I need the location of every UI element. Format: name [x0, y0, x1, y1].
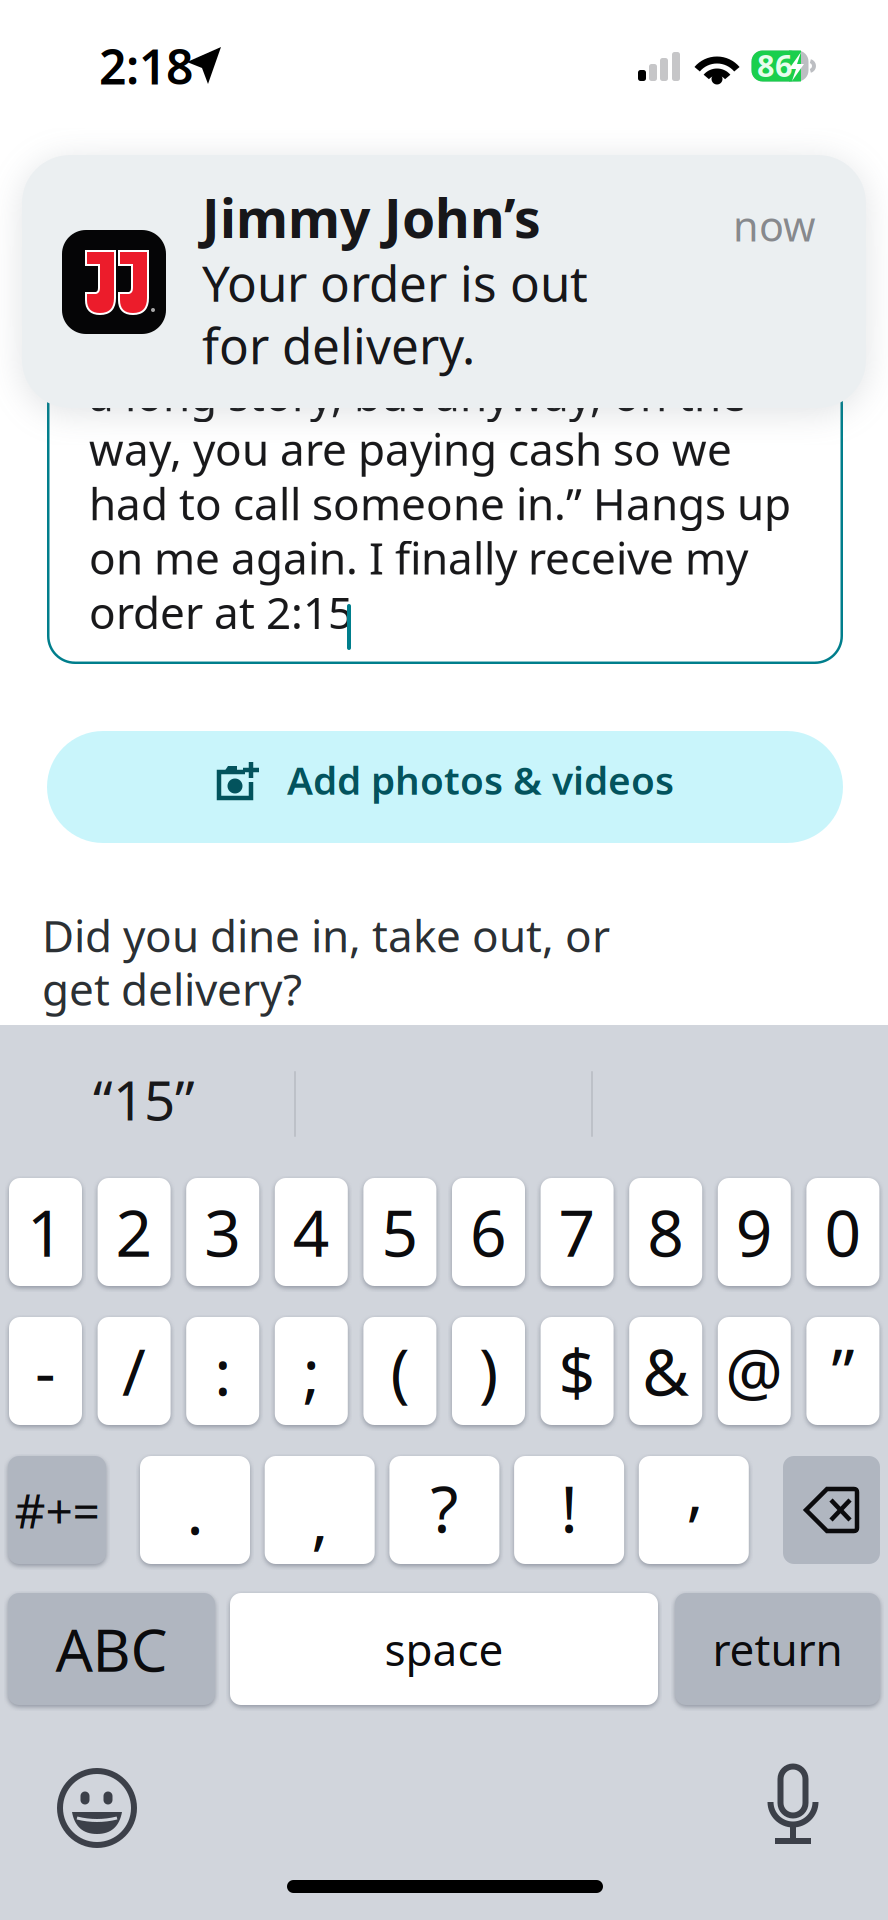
staticText: ;	[303, 1328, 320, 1413]
button[interactable]: Delete	[783, 1456, 880, 1564]
button[interactable]: return	[675, 1593, 880, 1705]
button[interactable]: ;	[275, 1317, 348, 1425]
staticText: :	[214, 1328, 231, 1413]
staticText: had to call someone in.” Hangs up	[89, 474, 791, 532]
staticText: Did you dine in, take out, or	[42, 906, 610, 964]
staticText: Your order is out	[202, 250, 588, 315]
staticText: 2	[116, 1189, 153, 1274]
button[interactable]: 3	[186, 1178, 259, 1286]
staticText: a long story, but anyway, on the	[89, 365, 746, 423]
button[interactable]: 4	[275, 1178, 348, 1286]
button[interactable]: ”	[806, 1317, 879, 1425]
staticText: 86	[757, 45, 793, 85]
staticText: 9	[736, 1189, 773, 1274]
staticText: on me again. I finally receive my	[89, 528, 748, 587]
button[interactable]: Emoji keyboard	[59, 1770, 135, 1846]
button[interactable]: @	[718, 1317, 791, 1425]
staticText: space	[384, 1620, 503, 1678]
button[interactable]: !	[514, 1456, 624, 1564]
button[interactable]: ABC	[8, 1593, 215, 1705]
button[interactable]: Add photos & videos	[47, 731, 843, 843]
staticText: order at 2:15	[89, 583, 353, 641]
staticText: return	[712, 1620, 842, 1678]
staticText: 3	[204, 1189, 241, 1274]
button[interactable]: #+=	[8, 1456, 106, 1564]
staticText: &	[642, 1328, 689, 1413]
button[interactable]: 5	[363, 1178, 436, 1286]
button[interactable]: space	[230, 1593, 658, 1705]
staticText: (	[390, 1328, 409, 1413]
staticText: ,	[311, 1476, 328, 1561]
staticText: ABC	[55, 1610, 167, 1688]
button[interactable]: :	[186, 1317, 259, 1425]
staticText: ”	[831, 1328, 854, 1413]
staticText: @	[725, 1328, 783, 1413]
button[interactable]: Dictate	[765, 1766, 821, 1846]
staticText: ?	[430, 1465, 458, 1550]
staticText: Add photos & videos	[287, 754, 674, 805]
button[interactable]: .	[140, 1456, 250, 1564]
staticText: ’	[688, 1485, 699, 1570]
button[interactable]: -	[9, 1317, 82, 1425]
button[interactable]: /	[98, 1317, 171, 1425]
staticText: 4	[293, 1189, 330, 1274]
staticText: $	[559, 1328, 596, 1413]
staticText: now	[733, 198, 815, 253]
staticText: #+=	[14, 1478, 99, 1542]
staticText: get delivery?	[42, 959, 302, 1018]
button[interactable]: )	[452, 1317, 525, 1425]
button[interactable]: 1	[9, 1178, 82, 1286]
button[interactable]: 8	[629, 1178, 702, 1286]
button[interactable]: 7	[541, 1178, 614, 1286]
button[interactable]: 9	[718, 1178, 791, 1286]
staticText: -	[35, 1328, 56, 1413]
staticText: 8	[647, 1189, 684, 1274]
staticText: !	[561, 1465, 578, 1550]
button[interactable]: Jimmy John’s	[22, 155, 866, 408]
button[interactable]: ?	[389, 1456, 499, 1564]
button[interactable]: 6	[452, 1178, 525, 1286]
button[interactable]: $	[541, 1317, 614, 1425]
button[interactable]: (	[363, 1317, 436, 1425]
staticText: /	[122, 1328, 146, 1413]
button[interactable]: 2	[98, 1178, 171, 1286]
staticText: “15”	[93, 1063, 195, 1136]
button[interactable]: 0	[806, 1178, 879, 1286]
staticText: 7	[559, 1189, 596, 1274]
staticText: 1	[27, 1189, 64, 1274]
staticText: Jimmy John’s	[202, 182, 541, 253]
staticText: for delivery.	[202, 312, 475, 378]
button[interactable]: &	[629, 1317, 702, 1425]
staticText: )	[479, 1328, 498, 1413]
button[interactable]: ,	[265, 1456, 375, 1564]
staticText: way, you are paying cash so we	[89, 419, 732, 478]
button[interactable]: ’	[639, 1456, 749, 1564]
staticText: .	[186, 1467, 203, 1552]
staticText: 2:18	[99, 34, 193, 98]
staticText: 0	[824, 1189, 861, 1274]
staticText: 5	[381, 1189, 418, 1274]
staticText: 6	[470, 1189, 507, 1274]
